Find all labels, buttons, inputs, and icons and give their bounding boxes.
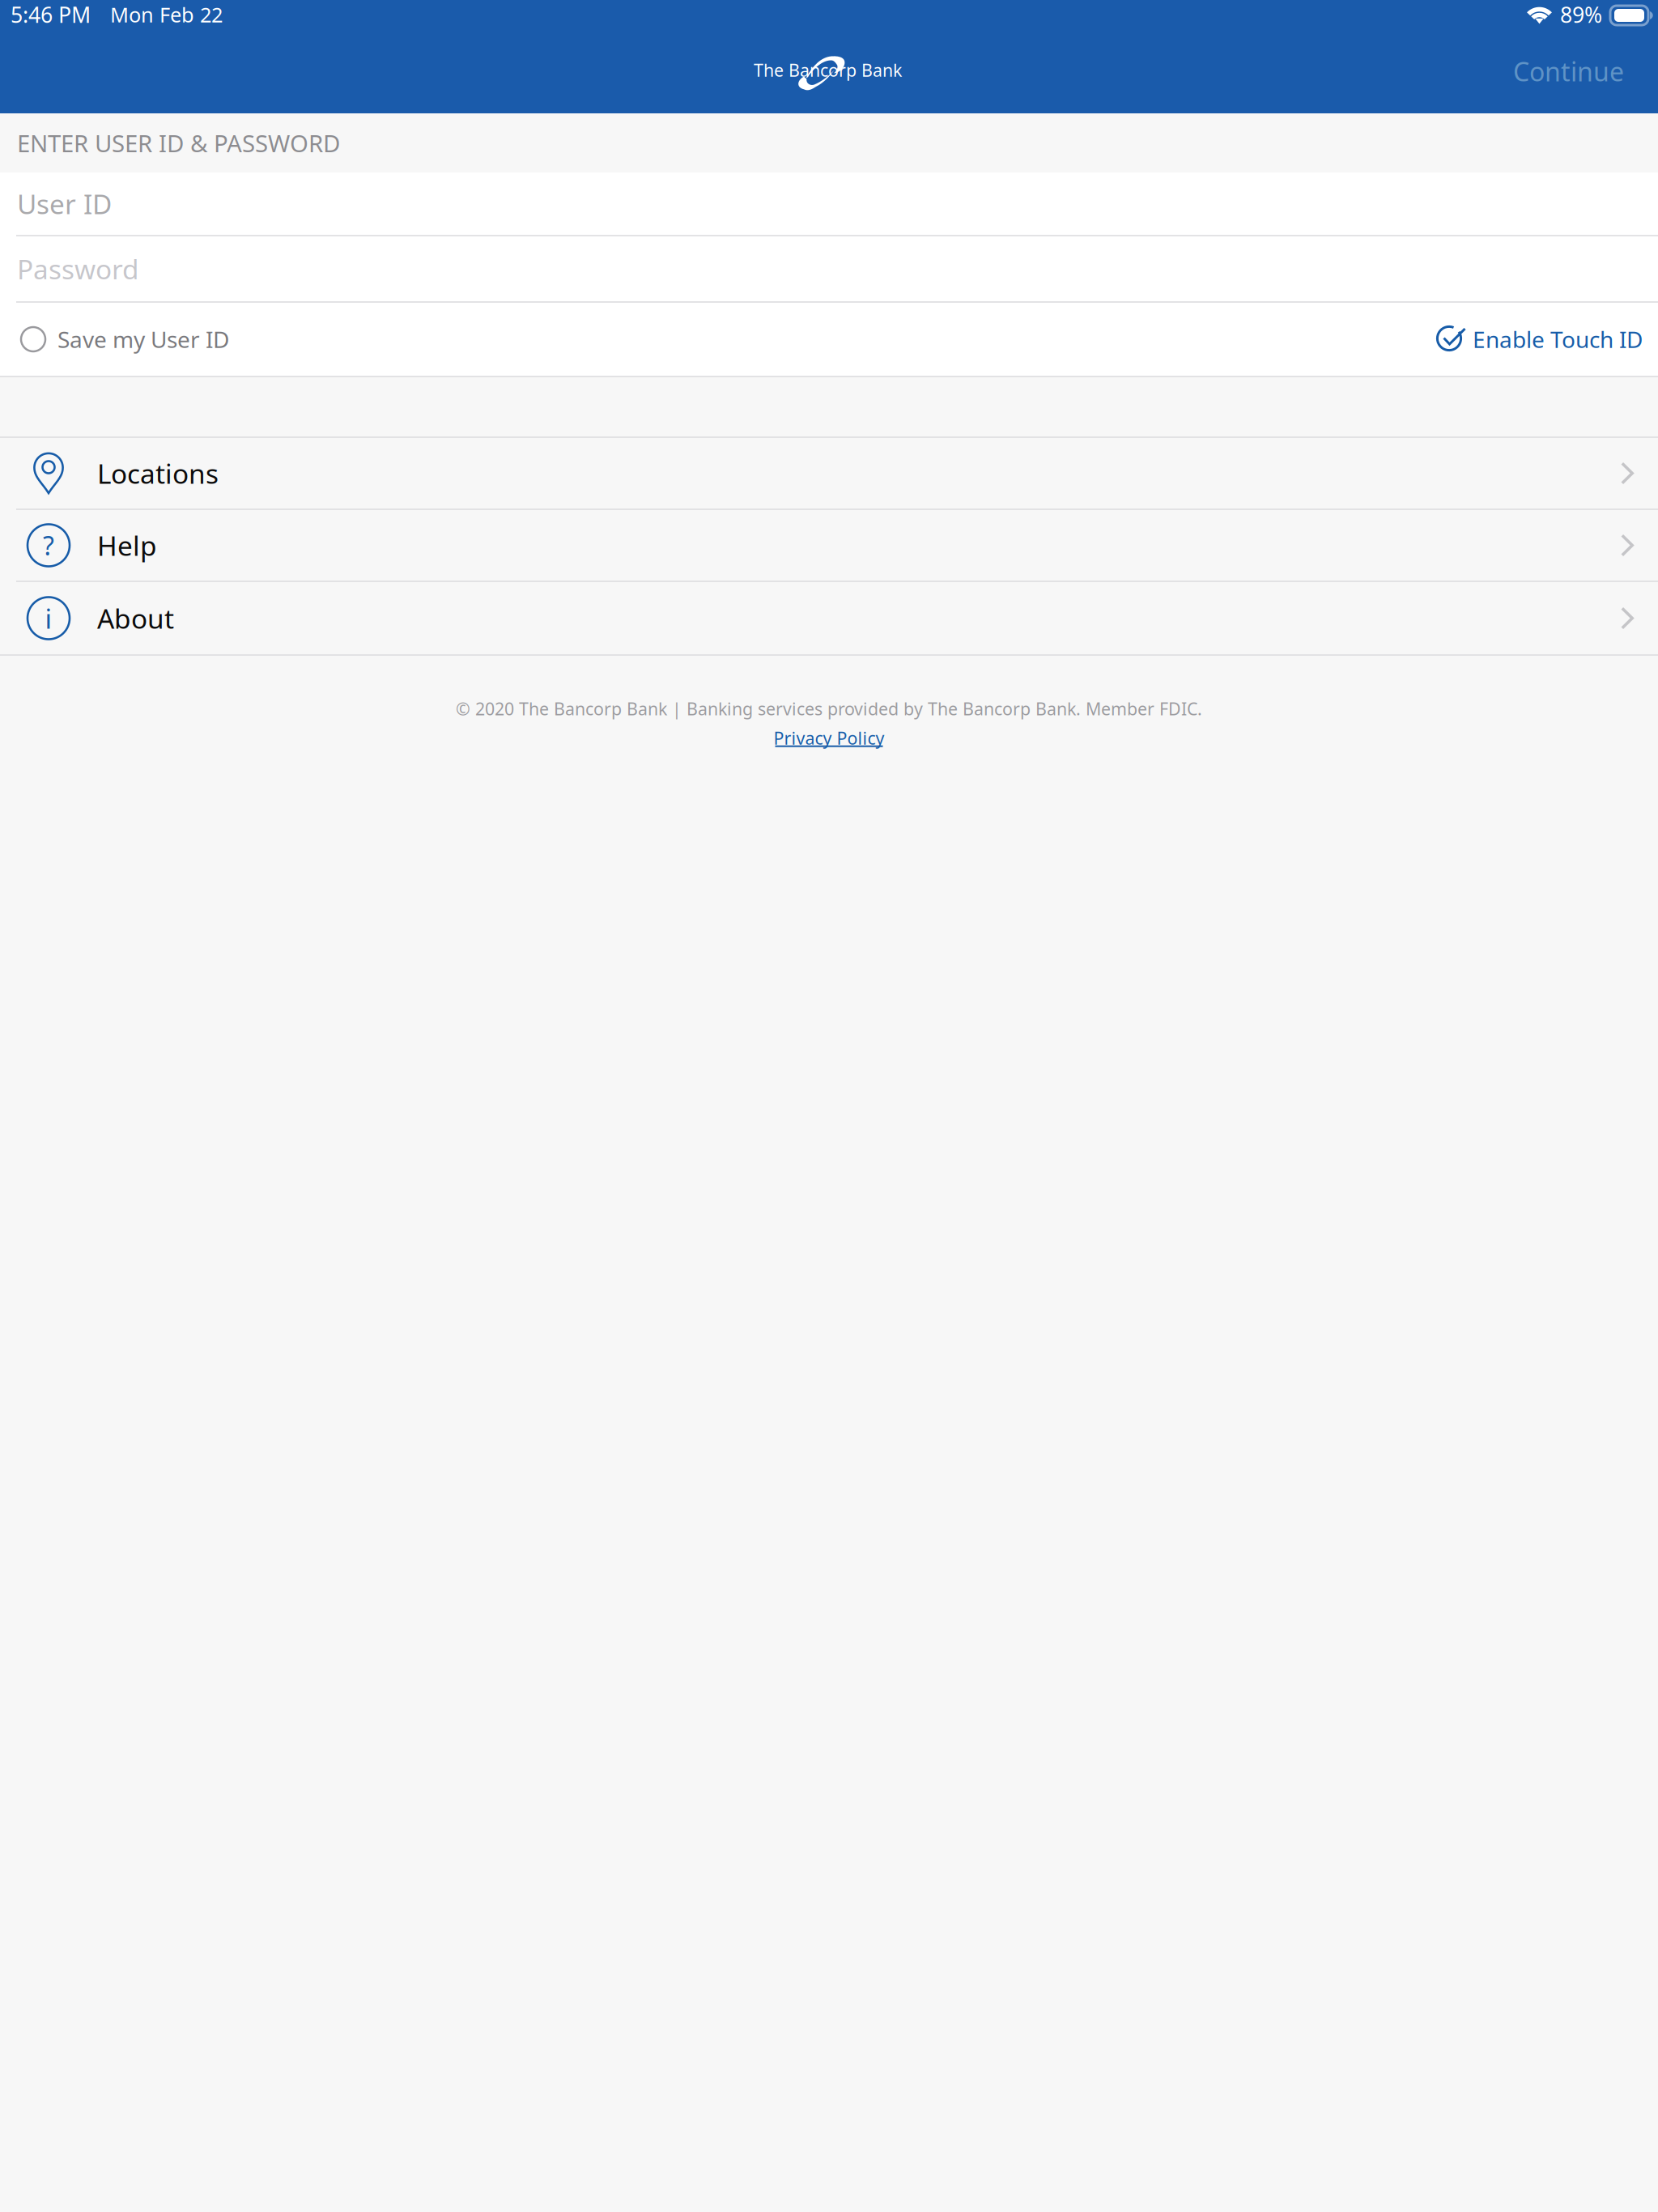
staticText: © 2020 The Bancorp Bank | Banking servic… xyxy=(456,697,1202,720)
staticText: User ID xyxy=(17,186,112,222)
staticText: Continue xyxy=(1513,54,1624,88)
staticText: 5:46 PM xyxy=(11,0,91,29)
staticText: The Bancorp Bank xyxy=(754,59,902,81)
staticText: Locations xyxy=(97,455,219,491)
staticText: Save my User ID xyxy=(57,324,229,354)
button[interactable]: Locations xyxy=(0,438,1658,510)
staticText: Mon Feb 22 xyxy=(110,1,223,28)
staticText: Privacy Policy xyxy=(774,727,884,749)
button[interactable]: Continue xyxy=(1494,41,1658,101)
staticText: ? xyxy=(43,528,54,563)
button[interactable]: Save my User ID xyxy=(0,308,229,371)
staticText: Help xyxy=(97,527,157,563)
button[interactable]: i xyxy=(0,582,1658,656)
staticText: i xyxy=(45,600,52,636)
staticText: Enable Touch ID xyxy=(1473,324,1643,354)
staticText: 89% xyxy=(1560,0,1602,29)
staticText: Password xyxy=(17,251,139,287)
button[interactable]: Enable Touch ID xyxy=(1432,308,1658,371)
button[interactable]: ? xyxy=(0,510,1658,582)
staticText: ENTER USER ID & PASSWORD xyxy=(17,127,340,159)
staticText: About xyxy=(97,600,174,636)
button[interactable]: Privacy Policy xyxy=(774,727,884,749)
